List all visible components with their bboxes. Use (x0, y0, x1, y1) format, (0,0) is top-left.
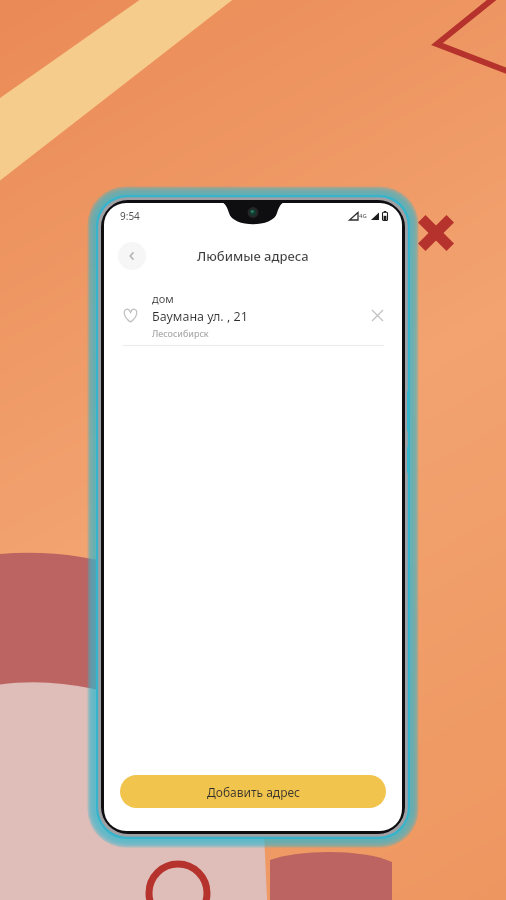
staticText: 9:54 (120, 209, 140, 223)
button[interactable]: Remove address (360, 298, 394, 332)
staticText: 4G (359, 212, 367, 220)
staticText: Любимые адреса (197, 247, 309, 265)
button[interactable]: Back (118, 242, 146, 270)
button[interactable]: Добавить адрес (120, 775, 386, 808)
staticText: Добавить адрес (207, 784, 300, 800)
button[interactable]: дом (104, 285, 402, 346)
staticText: Лесосибирск (152, 327, 209, 339)
staticText: дом (152, 291, 174, 306)
staticText: Баумана ул. , 21 (152, 308, 248, 325)
